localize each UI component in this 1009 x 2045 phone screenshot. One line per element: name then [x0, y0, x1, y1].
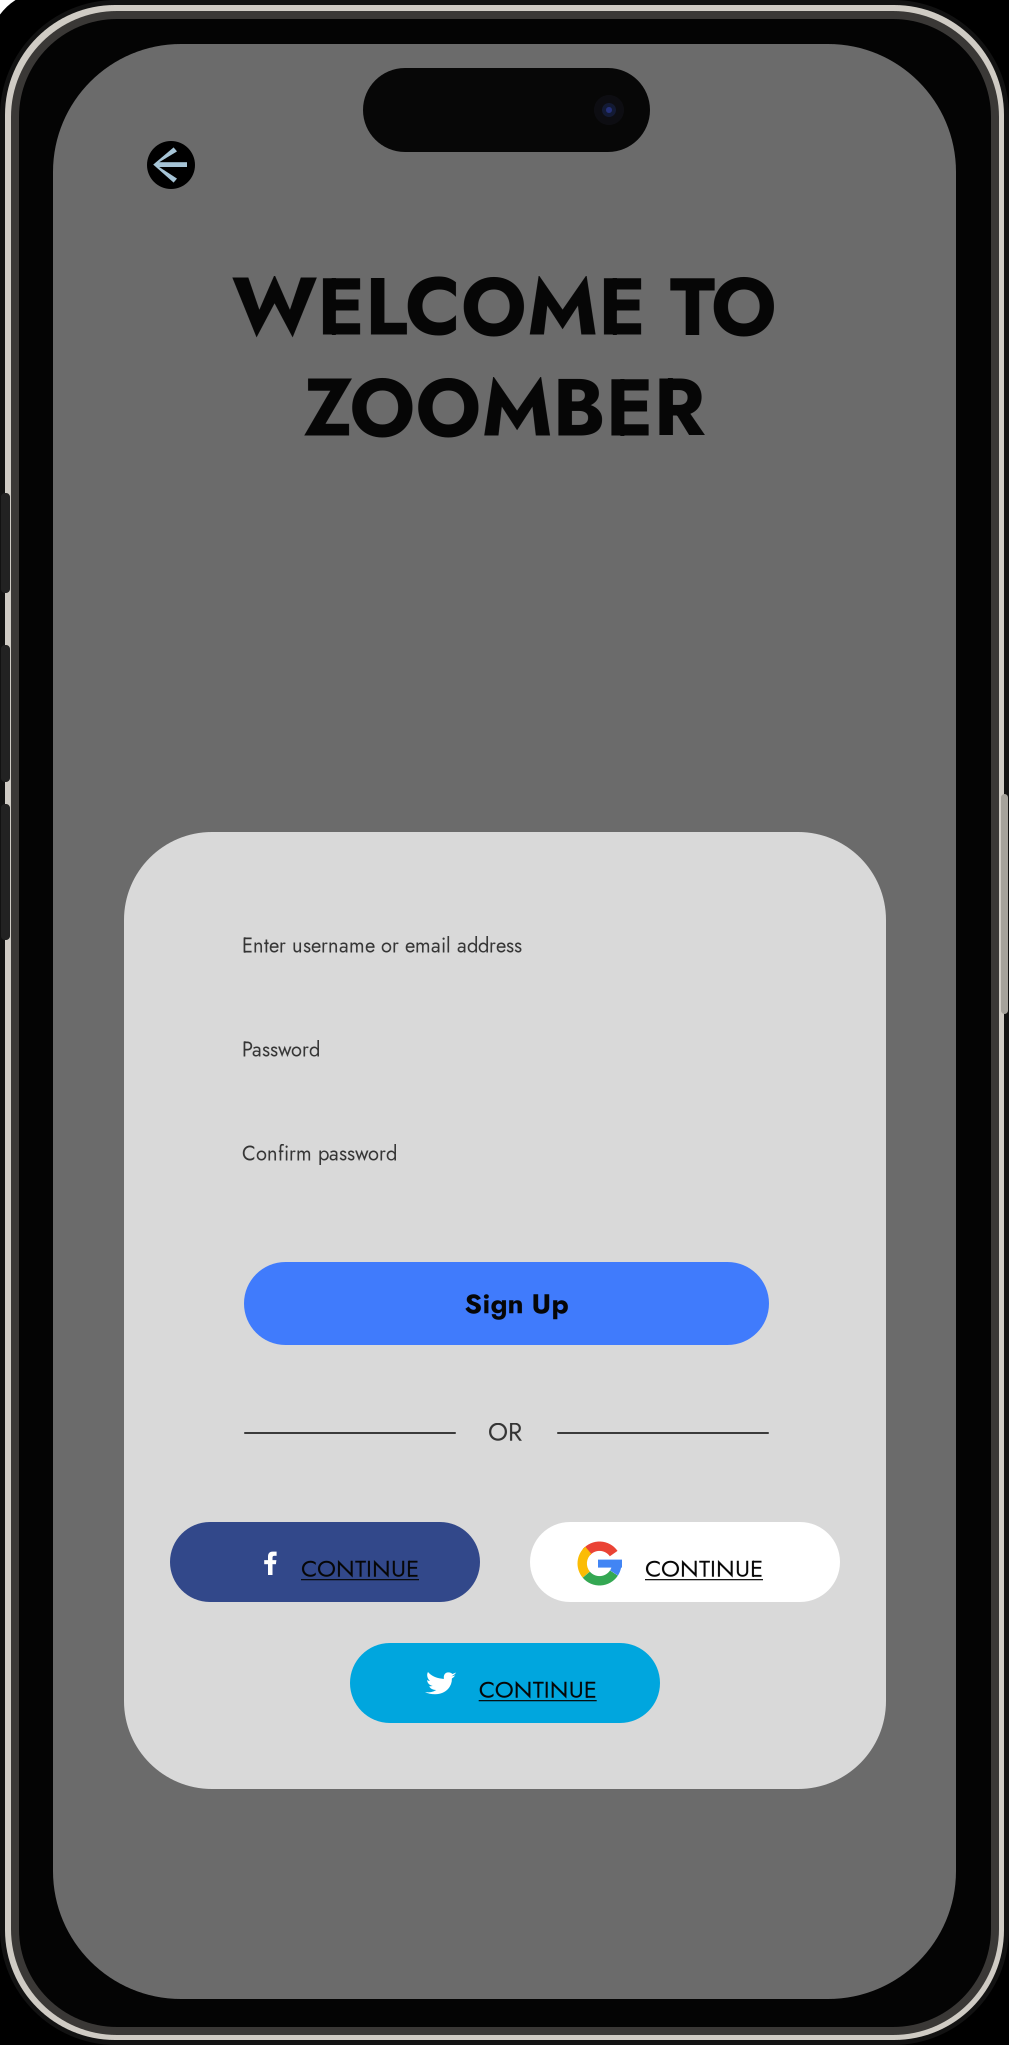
- button[interactable]: CONTINUE: [350, 1643, 660, 1723]
- staticText: CONTINUE: [301, 1551, 419, 1586]
- staticText: Confirm password: [242, 1139, 397, 1168]
- staticText: ZOOMBER: [303, 350, 705, 466]
- staticText: OR: [488, 1414, 522, 1450]
- staticText: Password: [242, 1035, 320, 1064]
- staticText: CONTINUE: [645, 1551, 763, 1586]
- button[interactable]: Back: [147, 141, 195, 189]
- staticText: Enter username or email address: [242, 931, 522, 960]
- staticText: WELCOME TO: [232, 249, 777, 365]
- button[interactable]: CONTINUE: [170, 1522, 480, 1602]
- button[interactable]: CONTINUE: [530, 1522, 840, 1602]
- staticText: CONTINUE: [479, 1672, 597, 1707]
- staticText: Sign Up: [464, 1283, 568, 1324]
- button[interactable]: Sign Up: [244, 1262, 769, 1345]
